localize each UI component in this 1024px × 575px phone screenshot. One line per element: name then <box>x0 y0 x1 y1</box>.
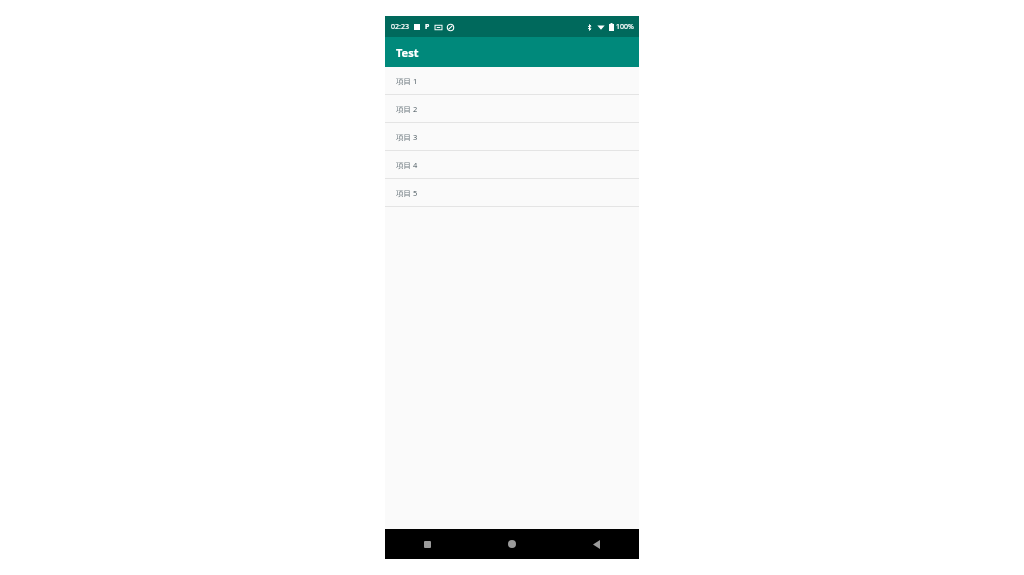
staticText: 項目 5 <box>396 188 418 198</box>
staticText: 項目 2 <box>396 104 418 114</box>
staticText: 02:23 <box>391 22 409 32</box>
button[interactable]: Recent apps <box>385 529 469 559</box>
staticText: 項目 3 <box>396 132 418 142</box>
button[interactable]: 項目 3 <box>385 123 639 150</box>
button[interactable]: 項目 1 <box>385 67 639 94</box>
staticText: 項目 4 <box>396 160 418 170</box>
staticText: 項目 1 <box>396 76 418 86</box>
button[interactable]: 項目 5 <box>385 179 639 206</box>
staticText: 100% <box>616 22 634 32</box>
button[interactable]: Back <box>554 529 639 559</box>
button[interactable]: Test <box>385 37 639 67</box>
button[interactable]: 項目 2 <box>385 95 639 122</box>
button[interactable]: 項目 4 <box>385 151 639 178</box>
staticText: Test <box>396 45 419 60</box>
button[interactable]: Home <box>469 529 554 559</box>
staticText: P <box>425 22 430 32</box>
